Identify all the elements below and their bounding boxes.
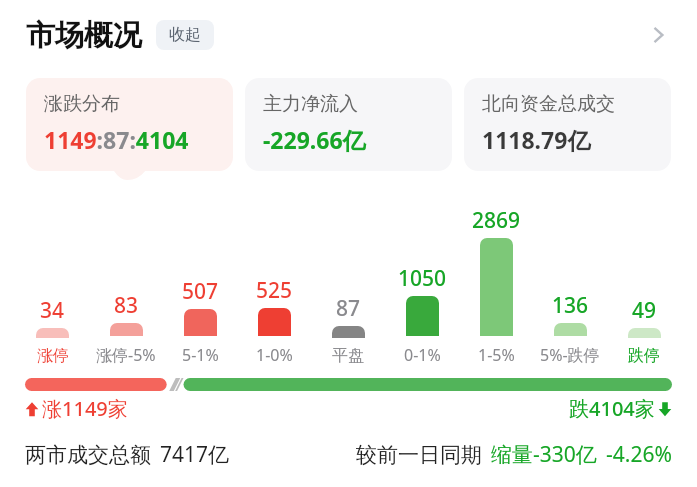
staticText: -229.66亿 bbox=[263, 124, 366, 155]
staticText: 涨停-5% bbox=[96, 344, 156, 366]
staticText: 5%-跌停 bbox=[540, 344, 600, 366]
button[interactable]: More bbox=[641, 18, 675, 52]
staticText: 1-5% bbox=[478, 344, 515, 366]
staticText: 83 bbox=[114, 291, 139, 320]
staticText: 34 bbox=[40, 296, 65, 325]
staticText: 1149:87:4104 bbox=[44, 124, 189, 155]
button[interactable]: 收起 bbox=[156, 20, 214, 50]
button[interactable]: 涨跌分布 bbox=[26, 78, 233, 171]
staticText: 涨跌分布 bbox=[44, 92, 120, 116]
staticText: 主力净流入 bbox=[263, 92, 358, 116]
staticText: 87 bbox=[336, 294, 361, 323]
staticText: 7417亿 bbox=[160, 440, 230, 469]
staticText: 5-1% bbox=[182, 344, 219, 366]
staticText: 两市成交总额 bbox=[25, 442, 151, 468]
staticText: 507 bbox=[182, 277, 219, 306]
staticText: 1118.79亿 bbox=[482, 124, 591, 155]
staticText: 跌4104家 bbox=[569, 395, 655, 422]
staticText: 跌停 bbox=[628, 346, 660, 366]
staticText: 涨1149家 bbox=[42, 395, 128, 422]
staticText: 525 bbox=[256, 276, 293, 305]
staticText: 涨停 bbox=[37, 346, 69, 366]
staticText: 平盘 bbox=[332, 346, 364, 366]
staticText: -4.26% bbox=[606, 440, 672, 469]
staticText: 2869 bbox=[472, 206, 521, 235]
staticText: 收起 bbox=[169, 25, 201, 45]
staticText: 缩量-330亿 bbox=[491, 440, 597, 469]
staticText: 市场概况 bbox=[26, 17, 142, 54]
staticText: 1050 bbox=[398, 264, 447, 293]
staticText: 136 bbox=[552, 291, 589, 320]
staticText: 1-0% bbox=[256, 344, 293, 366]
button[interactable]: 北向资金总成交 bbox=[464, 78, 671, 171]
staticText: 49 bbox=[632, 296, 657, 325]
button[interactable]: 主力净流入 bbox=[245, 78, 452, 171]
staticText: 较前一日同期 bbox=[356, 442, 482, 468]
staticText: 0-1% bbox=[404, 344, 441, 366]
staticText: 北向资金总成交 bbox=[482, 92, 615, 116]
